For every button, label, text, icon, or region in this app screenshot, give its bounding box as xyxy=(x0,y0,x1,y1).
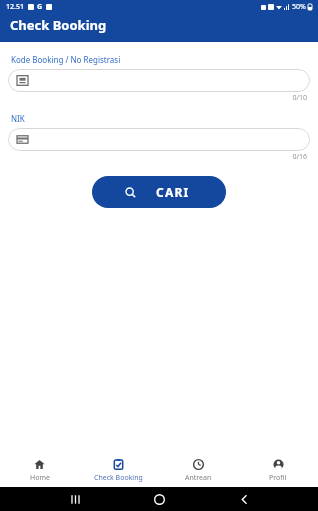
staticText: Antrean xyxy=(185,473,212,483)
staticText: Kode Booking / No Registrasi xyxy=(11,54,121,65)
staticText: 0/10 xyxy=(8,93,307,103)
staticText: 50% xyxy=(292,2,306,12)
staticText: NIK xyxy=(11,113,25,124)
button[interactable]: Home xyxy=(0,455,79,487)
staticText: Check Booking xyxy=(94,473,143,483)
staticText: Check Booking xyxy=(10,16,107,34)
button[interactable]: Check Booking xyxy=(79,455,158,487)
button[interactable]: Profil xyxy=(238,455,318,487)
button[interactable]: CARI xyxy=(92,176,226,208)
staticText: CARI xyxy=(156,184,190,200)
staticText: 0/16 xyxy=(8,152,307,162)
staticText: G xyxy=(37,2,43,12)
button[interactable] xyxy=(8,128,310,151)
button[interactable]: Antrean xyxy=(158,455,238,487)
staticText: Home xyxy=(30,473,50,483)
staticText: Profil xyxy=(269,473,287,483)
button[interactable] xyxy=(8,69,310,92)
staticText: 12.51 xyxy=(6,2,24,12)
